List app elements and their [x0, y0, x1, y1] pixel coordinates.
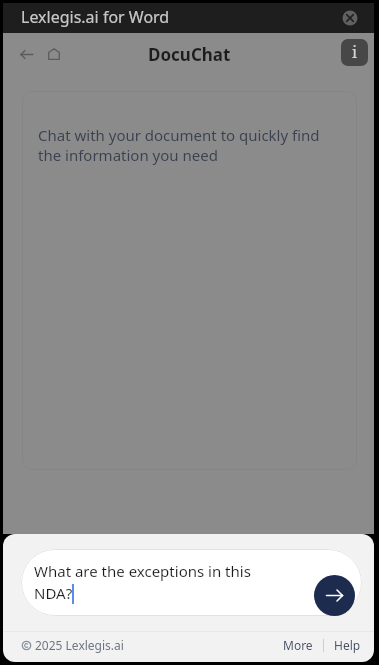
staticText: i — [352, 41, 358, 63]
button[interactable]: Home — [39, 39, 69, 69]
staticText: Lexlegis.ai for Word — [21, 6, 170, 28]
staticText: What are the exceptions in this NDA? — [34, 561, 288, 604]
staticText: Help — [334, 637, 361, 653]
button[interactable]: Help — [332, 639, 363, 655]
staticText: 2025 Lexlegis.ai — [35, 637, 124, 653]
button[interactable]: More — [281, 639, 315, 655]
button[interactable]: Information — [341, 39, 368, 66]
staticText: More — [283, 637, 313, 653]
button[interactable]: Send — [314, 575, 355, 616]
button[interactable]: Close — [337, 5, 363, 31]
staticText: DocuChat — [148, 43, 231, 66]
staticText: Chat with your document to quickly find … — [38, 125, 339, 165]
button[interactable]: Back — [11, 39, 41, 69]
